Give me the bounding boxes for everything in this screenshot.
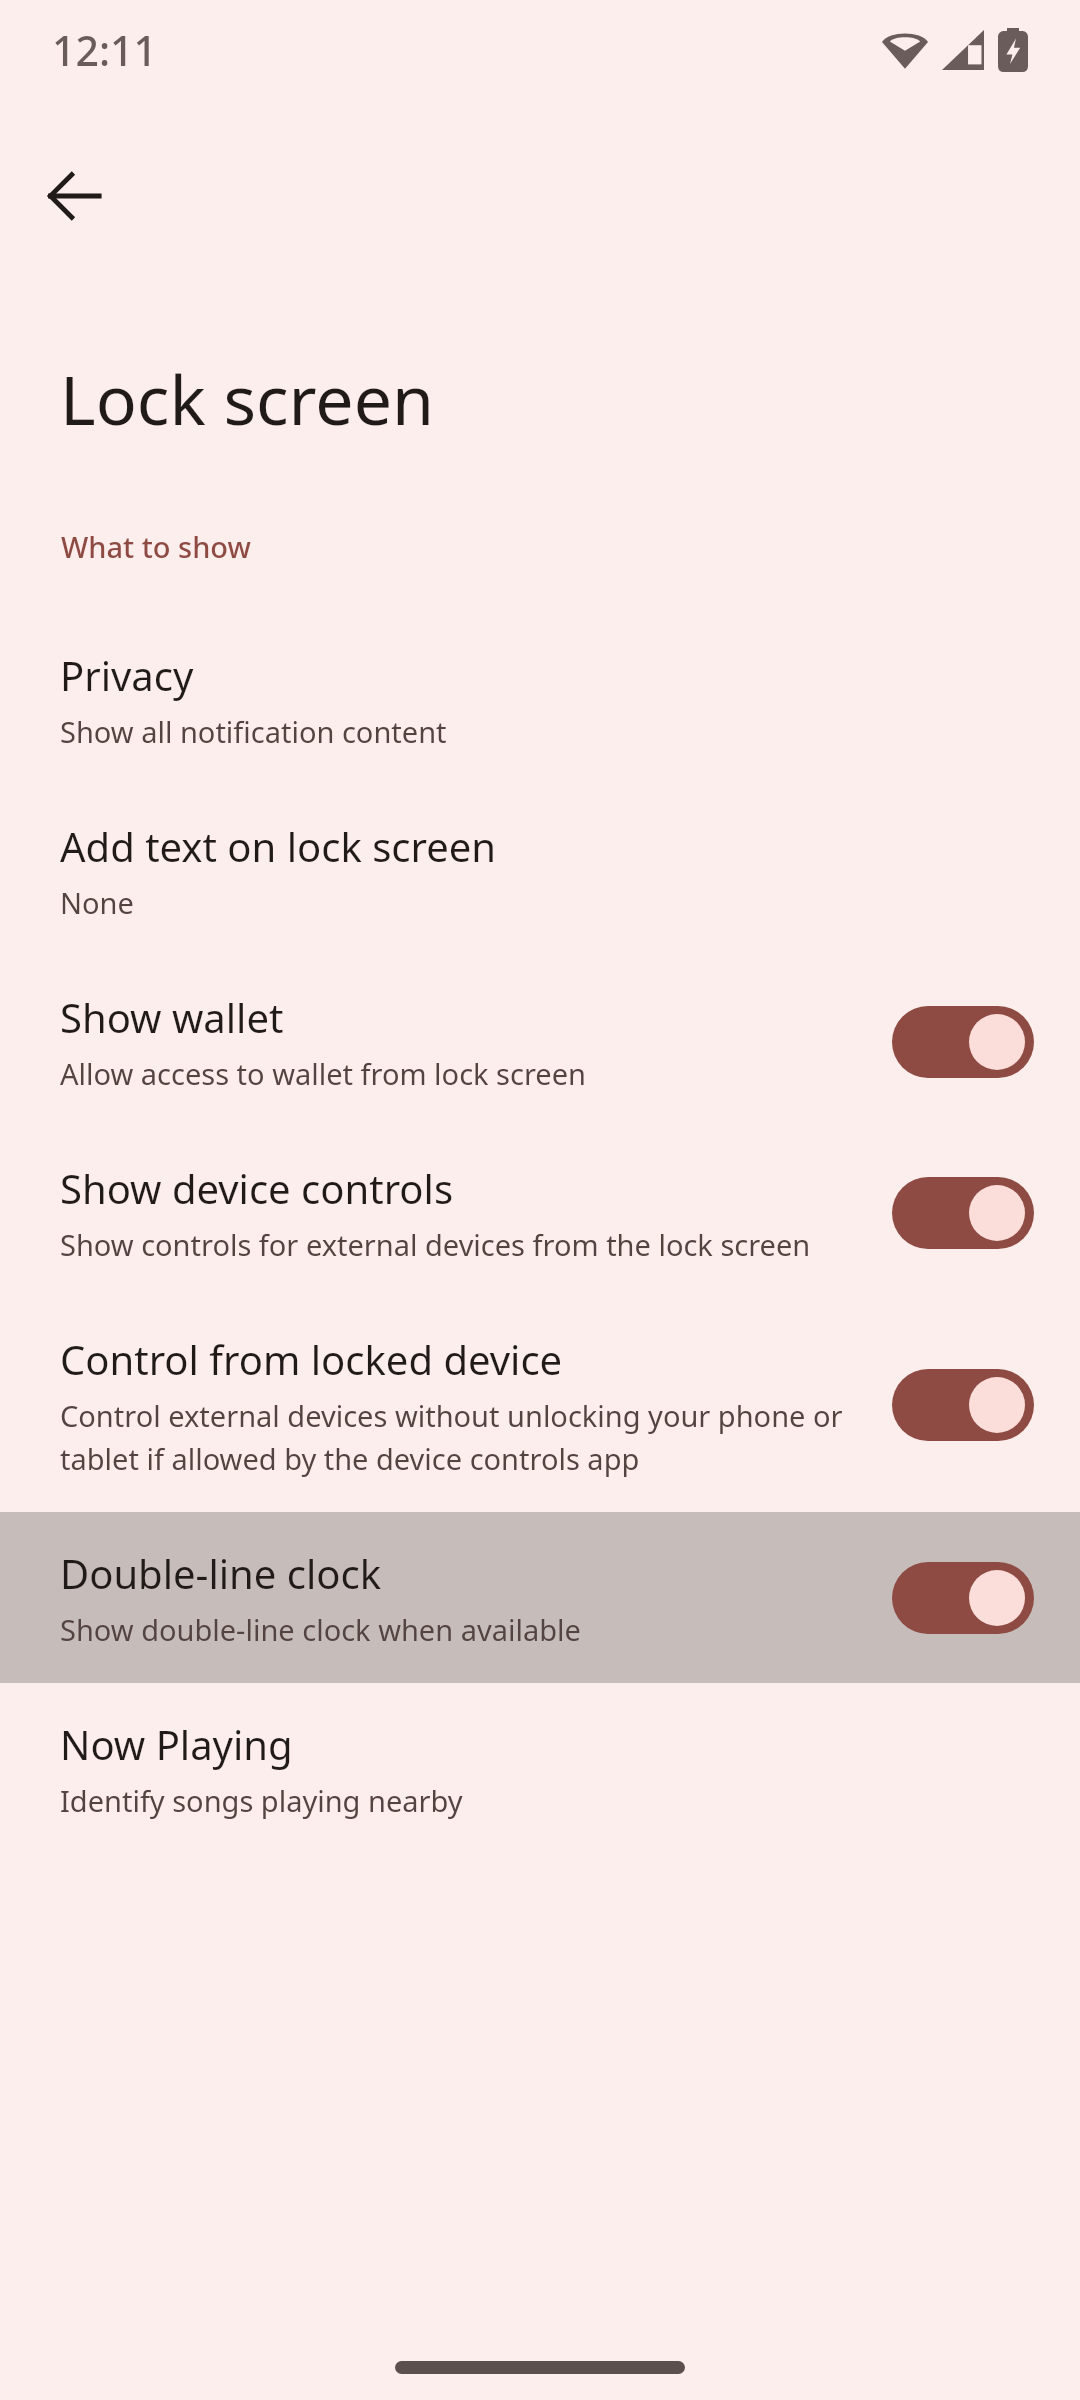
staticText: Show device controls xyxy=(60,1161,454,1215)
staticText: 12:11 xyxy=(52,22,157,78)
staticText: Double-line clock xyxy=(60,1546,382,1600)
button[interactable]: Toggle xyxy=(892,1558,1034,1638)
button[interactable]: Control from locked device xyxy=(0,1298,1080,1512)
button[interactable]: Show wallet xyxy=(0,956,1080,1127)
button[interactable]: Add text on lock screen xyxy=(0,785,1080,956)
staticText: Control external devices without unlocki… xyxy=(60,1396,868,1478)
staticText: What to show xyxy=(61,527,251,566)
staticText: None xyxy=(60,883,134,922)
staticText: Now Playing xyxy=(60,1717,293,1771)
button[interactable]: Toggle xyxy=(892,1002,1034,1082)
staticText: Allow access to wallet from lock screen xyxy=(60,1054,586,1093)
staticText: Control from locked device xyxy=(60,1332,563,1386)
button[interactable]: Show device controls xyxy=(0,1127,1080,1298)
staticText: Identify songs playing nearby xyxy=(60,1781,463,1820)
button[interactable]: Toggle xyxy=(892,1173,1034,1253)
staticText: Lock screen xyxy=(60,352,435,445)
button[interactable]: Double-line clock xyxy=(0,1512,1080,1683)
button[interactable]: Back xyxy=(22,144,126,248)
button[interactable]: Toggle xyxy=(892,1365,1034,1445)
staticText: Privacy xyxy=(60,648,194,702)
staticText: Show all notification content xyxy=(60,712,447,751)
staticText: Show wallet xyxy=(60,990,284,1044)
staticText: Add text on lock screen xyxy=(60,819,497,873)
staticText: Show controls for external devices from … xyxy=(60,1225,811,1264)
button[interactable]: Privacy xyxy=(0,614,1080,785)
button[interactable]: Now Playing xyxy=(0,1683,1080,1854)
staticText: Show double-line clock when available xyxy=(60,1610,581,1649)
